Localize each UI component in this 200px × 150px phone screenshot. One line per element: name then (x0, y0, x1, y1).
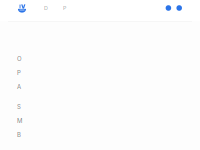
staticText: A (17, 83, 21, 90)
staticText: O (17, 55, 22, 62)
button[interactable]: Notifications (166, 5, 171, 11)
button[interactable]: S (0, 100, 200, 114)
button[interactable]: M (0, 114, 200, 128)
button[interactable]: P (63, 5, 66, 11)
button[interactable]: Account (176, 5, 182, 11)
staticText: S (17, 103, 21, 110)
staticText: P (17, 69, 21, 76)
button[interactable]: P (0, 66, 200, 80)
staticText: M (17, 117, 22, 124)
button[interactable]: D (44, 5, 48, 11)
button[interactable]: B (0, 128, 200, 142)
button[interactable]: A (0, 80, 200, 94)
button[interactable]: Home (18, 4, 26, 12)
staticText: D (44, 5, 48, 11)
staticText: B (17, 131, 21, 138)
staticText: P (63, 5, 66, 11)
button[interactable]: O (0, 52, 200, 66)
